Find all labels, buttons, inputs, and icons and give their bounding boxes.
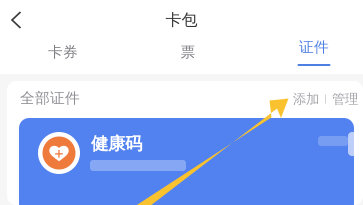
button[interactable]: 添加 [293,92,319,106]
staticText: 健康码 [91,133,142,154]
button[interactable]: 卡券 [13,35,113,69]
staticText: 添加 [293,91,319,107]
staticText: 卡券 [48,43,78,61]
button[interactable]: 票 [138,35,238,69]
button[interactable]: 健康码 [19,118,354,205]
staticText: 全部证件 [20,89,80,107]
staticText: 票 [180,43,195,61]
staticText: 证件 [299,38,329,56]
button[interactable]: 证件 [264,35,363,69]
staticText: 卡包 [165,10,197,30]
button[interactable]: 管理 [332,92,358,106]
button[interactable]: Back [0,8,32,32]
staticText: 管理 [332,91,358,107]
